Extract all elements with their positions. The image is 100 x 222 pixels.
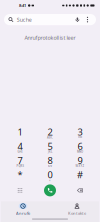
staticText: DEF xyxy=(78,136,82,139)
staticText: + xyxy=(49,178,51,182)
staticText: 8:41 xyxy=(19,3,26,8)
staticText: MNO xyxy=(77,150,83,153)
staticText: Kontakte xyxy=(68,210,86,216)
button[interactable]: Kontakte xyxy=(55,203,99,216)
staticText: 1 xyxy=(17,126,22,138)
staticText: Anrufprotokoll ist leer xyxy=(24,34,75,41)
button[interactable]: 5 xyxy=(35,140,65,155)
staticText: 6 xyxy=(77,140,82,152)
staticText: TUV xyxy=(47,164,52,168)
button[interactable]: Keypad xyxy=(5,183,35,197)
staticText: Anrufe xyxy=(16,210,30,216)
button[interactable]: 8 xyxy=(35,155,65,169)
staticText: # xyxy=(77,169,83,181)
staticText: * xyxy=(17,169,22,181)
staticText: GHI xyxy=(17,150,22,153)
button[interactable]: Suche xyxy=(4,14,96,25)
staticText: 3 xyxy=(77,126,82,138)
button[interactable]: # xyxy=(65,169,95,183)
staticText: WXYZ xyxy=(75,164,84,168)
button[interactable]: Delete xyxy=(65,183,95,197)
button[interactable]: 1 xyxy=(5,126,35,140)
button[interactable]: 9 xyxy=(65,155,95,169)
staticText: 7 xyxy=(17,154,22,167)
button[interactable]: Anrufe xyxy=(1,203,45,216)
button[interactable]: Call xyxy=(35,183,65,197)
button[interactable]: 2 xyxy=(35,126,65,140)
button[interactable]: 4 xyxy=(5,140,35,155)
staticText: 9 xyxy=(77,154,82,167)
staticText: 5 xyxy=(47,140,52,152)
button[interactable]: * xyxy=(5,169,35,183)
staticText: 8 xyxy=(47,154,52,167)
staticText: 2 xyxy=(47,126,52,138)
staticText: Suche xyxy=(17,16,32,23)
button[interactable]: 7 xyxy=(5,155,35,169)
staticText: PQRS xyxy=(16,164,23,168)
staticText: ABC xyxy=(47,136,53,139)
button[interactable]: 6 xyxy=(65,140,95,155)
staticText: 4 xyxy=(17,140,22,152)
staticText: JKL xyxy=(48,150,52,153)
staticText: 0 xyxy=(47,169,52,181)
button[interactable]: 3 xyxy=(65,126,95,140)
button[interactable]: 0 xyxy=(35,169,65,183)
